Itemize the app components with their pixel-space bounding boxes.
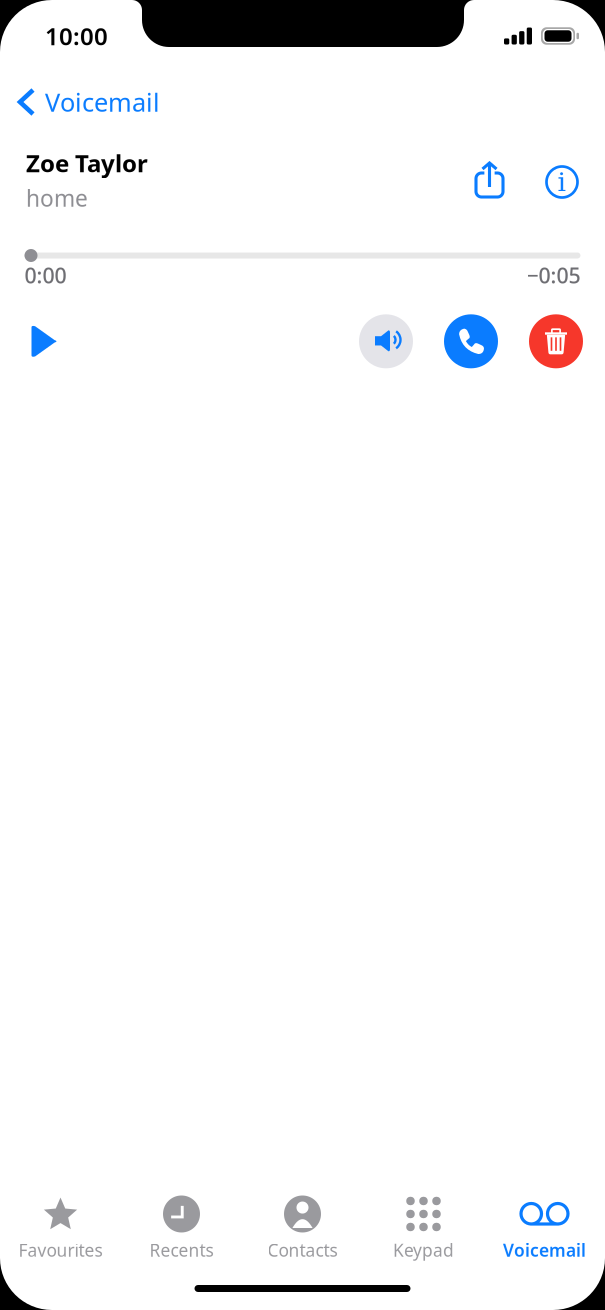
staticText: Voicemail [45,85,160,119]
button[interactable]: Speaker [359,314,413,368]
staticText: −0:05 [526,261,580,289]
staticText: Contacts [267,1238,337,1261]
staticText: 0:00 [24,261,66,289]
staticText: home [26,183,88,213]
button[interactable]: Recents [121,1194,242,1266]
button[interactable]: Info [538,154,586,206]
staticText: Zoe Taylor [26,147,148,179]
button[interactable]: Favourites [0,1194,121,1266]
button[interactable]: Delete [529,314,583,368]
staticText: Favourites [18,1238,102,1261]
staticText: Keypad [393,1238,454,1261]
button[interactable]: Voicemail [484,1194,605,1266]
button[interactable]: Play [18,314,72,368]
button[interactable]: Voicemail [0,75,176,129]
button[interactable]: Share [468,154,511,206]
button[interactable]: Contacts [242,1194,363,1266]
staticText: 10:00 [45,20,108,52]
button[interactable]: Call back [444,314,498,368]
staticText: Voicemail [503,1238,586,1261]
staticText: Recents [149,1238,213,1261]
staticText: i [557,166,566,197]
button[interactable]: Keypad [363,1194,484,1266]
